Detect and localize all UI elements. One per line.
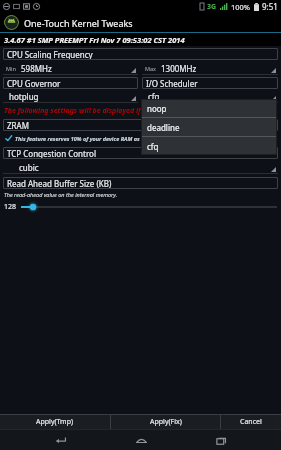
staticText: 128 (4, 202, 17, 212)
staticText: The following settings will be displayed… (4, 106, 186, 116)
staticText: Apply(Fix) (150, 417, 182, 427)
staticText: ZRAM (7, 120, 29, 131)
button[interactable]: Home (121, 430, 161, 450)
button[interactable]: Cancel (221, 415, 281, 429)
button[interactable]: deadline (141, 118, 277, 136)
button[interactable]: Apply(Fix) (111, 415, 220, 429)
button[interactable]: hotplug (3, 90, 138, 103)
staticText: One-Touch Kernel Tweaks (24, 17, 133, 29)
staticText: noop (147, 103, 167, 114)
staticText: CPU Governor (7, 78, 61, 89)
staticText: Cancel (240, 417, 262, 427)
staticText: Max (145, 65, 156, 72)
button[interactable]: CPU Governor (3, 77, 138, 89)
button[interactable]: noop (141, 99, 277, 117)
staticText: cfq (147, 141, 159, 152)
staticText: hotplug (9, 91, 39, 102)
staticText: cubic (19, 162, 39, 173)
button[interactable]: I/O Scheduler (142, 77, 278, 89)
staticText: The read-ahead value on the internal mem… (4, 191, 118, 198)
staticText: Min (6, 65, 16, 72)
button[interactable]: Read Ahead Buffer Size (KB) (3, 177, 278, 189)
button[interactable]: Recents (201, 430, 241, 450)
button[interactable]: CPU Scaling Frequency (3, 48, 278, 60)
staticText: Apply(Tmp) (36, 417, 74, 427)
staticText: 3G (207, 2, 217, 12)
staticText: cfq (148, 91, 160, 102)
staticText: Read Ahead Buffer Size (KB) (7, 178, 112, 189)
button[interactable]: cfq (142, 90, 278, 103)
staticText: 598MHz (21, 63, 52, 74)
staticText: CPU Scaling Frequency (7, 49, 93, 60)
staticText: 100% (231, 2, 251, 12)
button[interactable]: This feature reserves 10% of your device… (0, 133, 281, 144)
staticText: deadline (147, 122, 180, 133)
button[interactable]: ZRAM (3, 119, 278, 131)
staticText: TCP Congestion Control (7, 148, 96, 159)
staticText: I/O Scheduler (146, 78, 198, 89)
button[interactable]: TCP Congestion Control (3, 147, 278, 159)
staticText: This feature reserves 10% of your device… (15, 135, 187, 142)
button[interactable]: Max (142, 62, 278, 75)
button[interactable]: 128 (0, 200, 281, 214)
button[interactable]: Min (3, 62, 138, 75)
staticText: 9:51 (262, 1, 278, 12)
button[interactable]: Apply(Tmp) (0, 415, 110, 429)
button[interactable]: cubic (3, 161, 278, 174)
button[interactable]: cfq (141, 137, 277, 155)
button[interactable]: Back (40, 430, 80, 450)
staticText: 1300MHz (161, 63, 197, 74)
staticText: 3.4.67 #1 SMP PREEMPT Fri Nov 7 09:53:02… (4, 35, 185, 45)
